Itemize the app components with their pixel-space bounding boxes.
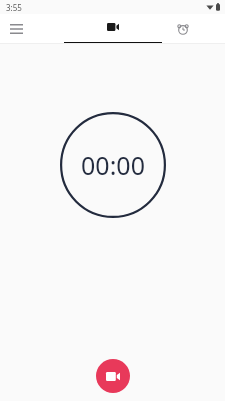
button[interactable]: Start recording (96, 359, 130, 393)
button[interactable]: Menu (2, 15, 30, 43)
staticText: 3:55 (6, 2, 22, 13)
button[interactable]: Scheduled recordings (169, 15, 197, 43)
button[interactable]: Recorder (64, 14, 162, 44)
staticText: 00:00 (81, 148, 145, 182)
